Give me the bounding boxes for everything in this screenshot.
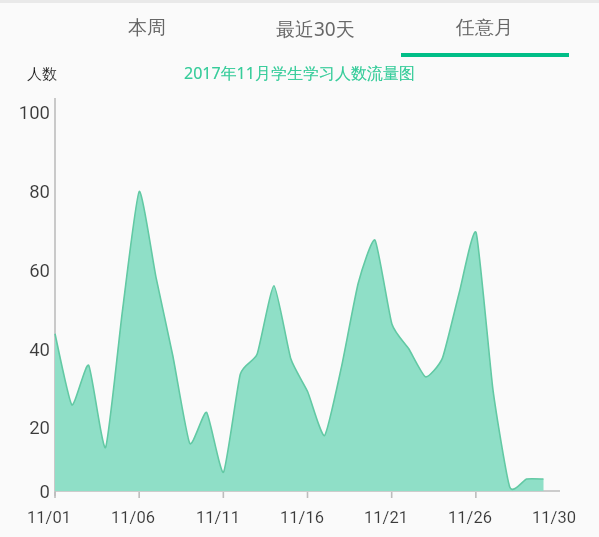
staticText: 11/11	[178, 508, 258, 527]
staticText: 11/01	[9, 508, 89, 527]
button[interactable]: 任意月	[400, 0, 569, 58]
staticText: 80	[0, 181, 50, 203]
staticText: 11/16	[262, 508, 342, 527]
staticText: 任意月	[456, 16, 513, 40]
staticText: 人数	[27, 65, 57, 84]
button[interactable]: 本周	[62, 0, 231, 58]
staticText: 60	[0, 260, 50, 282]
staticText: 100	[0, 102, 50, 124]
staticText: 11/30	[514, 508, 594, 527]
staticText: 0	[0, 481, 50, 503]
staticText: 11/26	[430, 508, 510, 527]
staticText: 20	[0, 417, 50, 439]
staticText: 11/21	[346, 508, 426, 527]
staticText: 本周	[128, 16, 166, 40]
staticText: 40	[0, 339, 50, 361]
staticText: 11/06	[93, 508, 173, 527]
staticText: 最近30天	[276, 16, 355, 42]
button[interactable]: 最近30天	[231, 0, 400, 58]
staticText: 2017年11月学生学习人数流量图	[184, 62, 415, 84]
